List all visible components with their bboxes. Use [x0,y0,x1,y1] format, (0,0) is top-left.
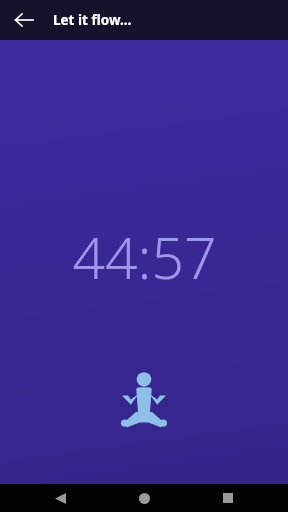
button[interactable]: Back [44,484,76,512]
staticText: Let it flow... [53,11,132,29]
button[interactable]: Recent apps [212,484,244,512]
button[interactable]: Home [128,484,160,512]
staticText: 44:57 [72,218,217,296]
button[interactable]: Back [0,0,48,40]
button[interactable]: Meditation pose [122,373,166,429]
